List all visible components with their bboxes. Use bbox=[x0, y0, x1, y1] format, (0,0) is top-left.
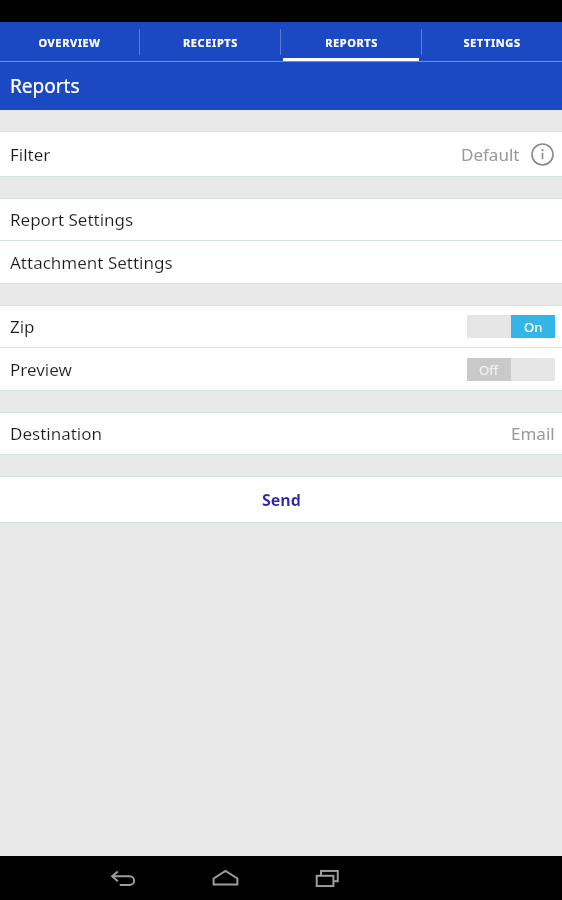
staticText: Destination bbox=[10, 422, 103, 445]
button[interactable]: Send bbox=[0, 477, 562, 522]
staticText: SETTINGS bbox=[463, 35, 521, 50]
button[interactable]: OVERVIEW bbox=[0, 22, 139, 62]
staticText: Filter bbox=[10, 143, 51, 166]
button[interactable]: Back bbox=[99, 856, 147, 900]
button[interactable]: On bbox=[467, 314, 555, 339]
button[interactable]: Preview bbox=[0, 348, 562, 390]
button[interactable]: Off bbox=[467, 357, 555, 382]
staticText: Report Settings bbox=[10, 208, 134, 231]
button[interactable]: SETTINGS bbox=[422, 22, 562, 62]
button[interactable]: Report Settings bbox=[0, 199, 562, 240]
button[interactable]: Attachment Settings bbox=[0, 241, 562, 283]
button[interactable]: RECEIPTS bbox=[140, 22, 280, 62]
button[interactable]: Home bbox=[201, 856, 249, 900]
staticText: On bbox=[524, 318, 543, 336]
staticText: Zip bbox=[10, 315, 35, 338]
button[interactable]: REPORTS bbox=[281, 22, 421, 62]
button[interactable]: Recent apps bbox=[303, 856, 351, 900]
button[interactable]: Filter bbox=[0, 132, 562, 176]
staticText: OVERVIEW bbox=[38, 35, 101, 50]
staticText: REPORTS bbox=[325, 35, 378, 50]
staticText: Send bbox=[262, 489, 301, 511]
staticText: Email bbox=[511, 422, 555, 445]
staticText: Reports bbox=[10, 73, 80, 99]
staticText: Preview bbox=[10, 358, 72, 381]
staticText: Off bbox=[479, 361, 499, 379]
staticText: Attachment Settings bbox=[10, 251, 173, 274]
button[interactable]: Destination bbox=[0, 413, 562, 454]
staticText: RECEIPTS bbox=[183, 35, 238, 50]
button[interactable]: Filter info bbox=[529, 141, 555, 167]
staticText: Default bbox=[461, 143, 520, 166]
button[interactable]: Zip bbox=[0, 306, 562, 347]
